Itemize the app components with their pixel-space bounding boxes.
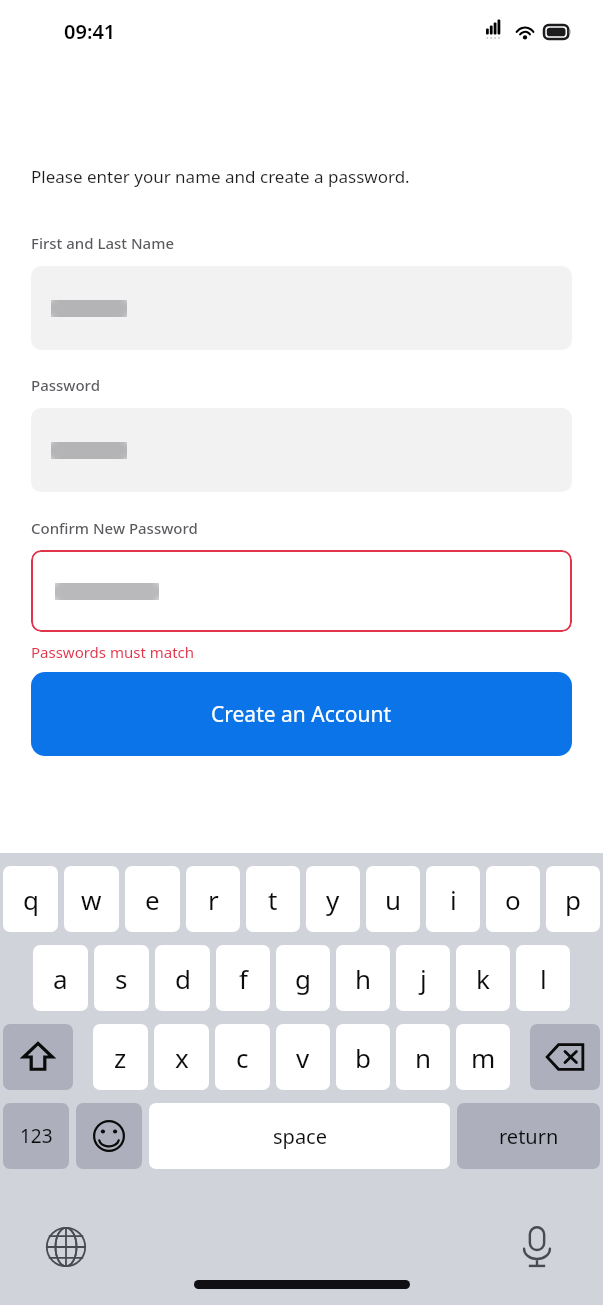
button[interactable]: v: [276, 1024, 330, 1090]
staticText: e: [145, 882, 160, 917]
button[interactable]: 123: [3, 1103, 69, 1169]
button[interactable]: p: [546, 866, 600, 932]
staticText: Passwords must match: [31, 642, 195, 662]
staticText: t: [268, 882, 278, 917]
staticText: q: [23, 882, 39, 917]
staticText: n: [415, 1040, 432, 1075]
staticText: f: [239, 961, 248, 996]
staticText: b: [355, 1040, 371, 1075]
staticText: z: [114, 1040, 127, 1075]
button[interactable]: n: [396, 1024, 450, 1090]
button[interactable]: i: [426, 866, 480, 932]
staticText: c: [236, 1040, 249, 1075]
button[interactable]: t: [246, 866, 300, 932]
button[interactable]: x: [154, 1024, 209, 1090]
staticText: Create an Account: [211, 700, 392, 729]
button[interactable]: y: [306, 866, 360, 932]
staticText: s: [115, 961, 128, 996]
button[interactable]: l: [516, 945, 570, 1011]
button[interactable]: a: [33, 945, 88, 1011]
button[interactable]: [31, 266, 572, 350]
button[interactable]: z: [93, 1024, 148, 1090]
button[interactable]: m: [456, 1024, 510, 1090]
staticText: h: [355, 961, 372, 996]
button[interactable]: b: [336, 1024, 390, 1090]
button[interactable]: space: [149, 1103, 450, 1169]
button[interactable]: Shift: [3, 1024, 73, 1090]
button[interactable]: r: [186, 866, 240, 932]
button[interactable]: Dictation: [511, 1221, 563, 1273]
button[interactable]: [31, 550, 572, 632]
button[interactable]: g: [276, 945, 330, 1011]
staticText: m: [471, 1040, 496, 1075]
button[interactable]: Backspace: [530, 1024, 600, 1090]
staticText: j: [420, 961, 427, 996]
staticText: v: [296, 1040, 310, 1075]
staticText: x: [175, 1040, 189, 1075]
staticText: p: [565, 882, 581, 917]
button[interactable]: j: [396, 945, 450, 1011]
button[interactable]: o: [486, 866, 540, 932]
staticText: Confirm New Password: [31, 518, 198, 538]
staticText: k: [476, 961, 490, 996]
button[interactable]: w: [64, 866, 119, 932]
button[interactable]: s: [94, 945, 149, 1011]
staticText: 123: [20, 1123, 53, 1149]
staticText: i: [450, 882, 457, 917]
button[interactable]: Change keyboard: [40, 1221, 92, 1273]
staticText: a: [53, 961, 68, 996]
staticText: Please enter your name and create a pass…: [31, 165, 410, 188]
staticText: space: [273, 1123, 327, 1150]
staticText: Password: [31, 375, 100, 395]
staticText: o: [505, 882, 521, 917]
button[interactable]: Create an Account: [31, 672, 572, 756]
staticText: 09:41: [64, 18, 116, 45]
button[interactable]: return: [457, 1103, 600, 1169]
button[interactable]: q: [3, 866, 58, 932]
button[interactable]: c: [215, 1024, 270, 1090]
button[interactable]: e: [125, 866, 180, 932]
button[interactable]: k: [456, 945, 510, 1011]
staticText: u: [385, 882, 402, 917]
button[interactable]: [31, 408, 572, 492]
button[interactable]: h: [336, 945, 390, 1011]
button[interactable]: Emoji: [76, 1103, 142, 1169]
staticText: First and Last Name: [31, 233, 174, 253]
staticText: return: [499, 1123, 559, 1150]
staticText: l: [540, 961, 547, 996]
staticText: d: [175, 961, 191, 996]
button[interactable]: d: [155, 945, 210, 1011]
staticText: g: [295, 961, 311, 996]
button[interactable]: f: [216, 945, 270, 1011]
staticText: y: [326, 882, 340, 917]
staticText: r: [208, 882, 219, 917]
staticText: w: [81, 882, 102, 917]
button[interactable]: u: [366, 866, 420, 932]
